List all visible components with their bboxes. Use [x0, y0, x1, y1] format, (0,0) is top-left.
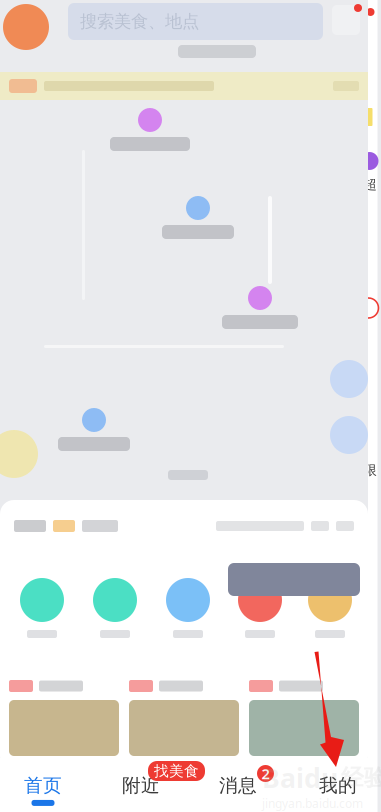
staticText: 经验 — [341, 764, 381, 792]
staticText: 附近 — [122, 774, 160, 797]
button[interactable]: Map control — [330, 360, 368, 398]
staticText: 我的 — [319, 774, 357, 797]
button[interactable]: Map control — [330, 416, 368, 454]
staticText: Baidu — [262, 760, 338, 795]
staticText: jingyan.baidu.com — [262, 795, 363, 811]
button[interactable] — [249, 680, 359, 756]
button[interactable]: Category — [90, 578, 140, 638]
button[interactable] — [9, 680, 119, 756]
button[interactable] — [129, 680, 239, 756]
button[interactable]: Map marker — [222, 286, 298, 329]
button[interactable]: Category — [163, 578, 213, 638]
button[interactable] — [0, 72, 368, 100]
button[interactable]: Profile — [3, 4, 49, 50]
button[interactable]: 附近 — [95, 758, 187, 812]
button[interactable]: 搜索美食、地点 — [68, 3, 323, 40]
staticText: 消息 — [219, 774, 257, 797]
button[interactable]: 首页 — [0, 758, 89, 812]
staticText: 找美食 — [154, 762, 199, 780]
staticText: 限 — [363, 462, 376, 478]
button[interactable]: Category — [17, 578, 67, 638]
button[interactable]: Map marker — [110, 108, 190, 151]
button[interactable]: Category — [235, 578, 285, 638]
button[interactable]: Map marker — [58, 408, 130, 451]
button[interactable]: Category — [305, 578, 355, 638]
staticText: 2 — [261, 764, 269, 783]
staticText: 搜索美食、地点 — [80, 11, 199, 32]
button[interactable]: Notifications — [332, 5, 360, 35]
staticText: 超 — [363, 176, 376, 192]
button[interactable]: 消息 — [192, 758, 284, 812]
button[interactable]: Map marker — [162, 196, 234, 239]
staticText: 首页 — [24, 774, 62, 797]
button[interactable]: 我的 — [292, 758, 381, 812]
